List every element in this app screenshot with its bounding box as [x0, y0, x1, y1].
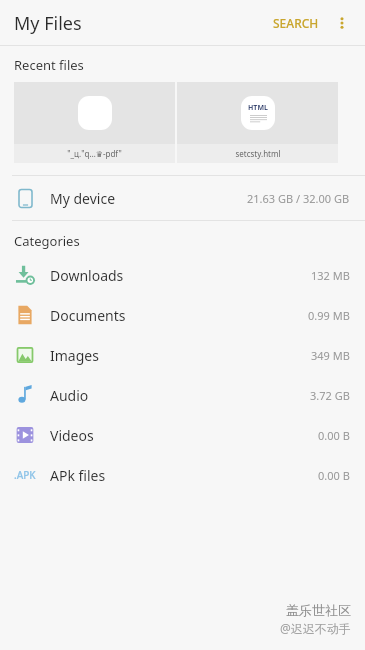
staticText: SEARCH: [273, 15, 319, 31]
button[interactable]: "_ц."q…♛-pdf": [14, 82, 175, 163]
button[interactable]: Documents: [0, 295, 365, 335]
staticText: @迟迟不动手: [280, 620, 351, 636]
staticText: Downloads: [50, 266, 124, 285]
staticText: .APK: [14, 468, 36, 482]
staticText: 盖乐世社区: [286, 602, 351, 618]
staticText: 0.00 B: [318, 468, 350, 483]
staticText: Recent files: [14, 56, 84, 74]
button[interactable]: Images: [0, 335, 365, 375]
staticText: Categories: [14, 232, 80, 250]
button[interactable]: Downloads: [0, 255, 365, 295]
staticText: "_ц."q…♛-pdf": [67, 148, 122, 159]
button[interactable]: More options: [325, 6, 359, 40]
button[interactable]: Videos: [0, 415, 365, 455]
button[interactable]: My device: [0, 176, 365, 220]
button[interactable]: HTML: [177, 82, 338, 163]
button[interactable]: .APK: [0, 455, 365, 495]
staticText: My device: [50, 189, 116, 208]
staticText: setcsty.html: [235, 148, 281, 159]
staticText: Documents: [50, 306, 126, 325]
staticText: 3.72 GB: [310, 388, 350, 403]
staticText: 21.63 GB / 32.00 GB: [247, 191, 350, 206]
staticText: 349 MB: [311, 348, 350, 363]
staticText: My Files: [14, 11, 82, 36]
staticText: Images: [50, 346, 99, 365]
staticText: Audio: [50, 386, 89, 405]
button[interactable]: SEARCH: [267, 9, 325, 37]
staticText: 0.99 MB: [308, 308, 350, 323]
staticText: 132 MB: [311, 268, 350, 283]
staticText: 0.00 B: [318, 428, 350, 443]
staticText: Videos: [50, 426, 94, 445]
staticText: HTML: [248, 103, 268, 113]
staticText: APk files: [50, 466, 106, 485]
button[interactable]: Audio: [0, 375, 365, 415]
